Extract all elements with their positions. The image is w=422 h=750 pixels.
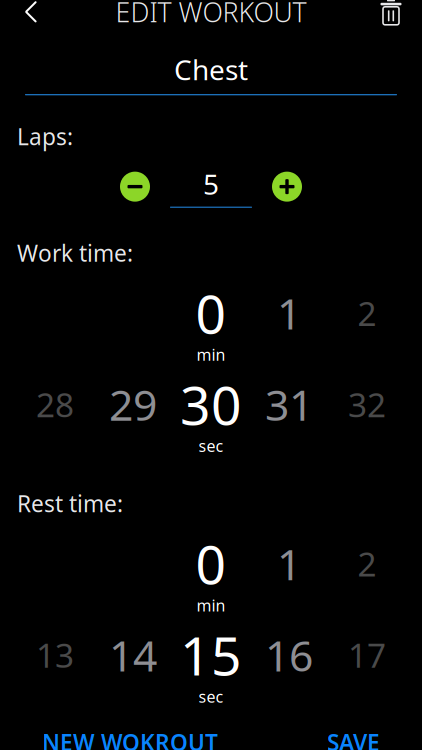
staticText: 0: [195, 528, 226, 599]
staticText: Chest: [174, 51, 248, 88]
staticText: 1: [277, 285, 301, 341]
button[interactable]: SAVE: [313, 715, 394, 750]
button[interactable]: Decrease laps: [118, 170, 152, 204]
staticText: sec: [198, 435, 223, 456]
staticText: min: [196, 344, 225, 365]
staticText: 15: [180, 619, 242, 690]
button[interactable]: Delete workout: [368, 0, 414, 32]
staticText: 30: [180, 369, 242, 440]
staticText: Laps:: [17, 121, 73, 151]
staticText: 13: [36, 633, 74, 677]
staticText: Rest time:: [17, 488, 123, 519]
button[interactable]: NEW WOKROUT: [28, 715, 232, 750]
staticText: Work time:: [17, 238, 133, 268]
staticText: 2: [357, 541, 376, 586]
staticText: 0: [195, 278, 226, 348]
staticText: SAVE: [327, 727, 380, 750]
staticText: EDIT WORKOUT: [115, 0, 306, 29]
button[interactable]: Increase laps: [270, 170, 304, 204]
staticText: 14: [109, 626, 157, 683]
staticText: 16: [265, 626, 313, 683]
staticText: 32: [348, 382, 386, 426]
staticText: 29: [109, 376, 157, 433]
staticText: 28: [36, 382, 74, 426]
button[interactable]: Back: [8, 0, 54, 33]
staticText: 5: [203, 165, 219, 203]
staticText: 31: [265, 376, 313, 433]
staticText: 2: [357, 291, 376, 335]
staticText: 1: [277, 535, 301, 592]
staticText: min: [196, 595, 225, 616]
staticText: 17: [348, 633, 386, 677]
staticText: sec: [198, 686, 223, 707]
staticText: NEW WOKROUT: [42, 727, 218, 750]
